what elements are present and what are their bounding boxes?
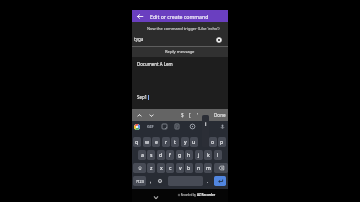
button[interactable]: a: [138, 150, 146, 160]
button[interactable]: Settings: [188, 121, 196, 132]
staticText: ?123: [136, 179, 144, 184]
button[interactable]: $: [179, 109, 185, 121]
staticText: q: [135, 139, 139, 146]
button[interactable]: y: [181, 137, 189, 147]
button[interactable]: r: [162, 137, 170, 147]
button[interactable]: Emoji: [156, 176, 164, 186]
button[interactable]: u: [190, 137, 198, 147]
staticText: ': [197, 112, 199, 118]
staticText: a: [141, 152, 144, 159]
staticText: y: [184, 139, 187, 146]
button[interactable]: x: [157, 163, 165, 173]
staticText: d: [159, 152, 163, 159]
button[interactable]: e: [152, 137, 160, 147]
button[interactable]: q: [133, 137, 141, 147]
button[interactable]: b: [185, 163, 193, 173]
button[interactable]: Next field: [147, 109, 155, 121]
staticText: r: [165, 139, 168, 146]
button[interactable]: g: [176, 150, 184, 160]
staticText: o: [211, 139, 215, 146]
button[interactable]: n: [195, 163, 203, 173]
button[interactable]: d: [157, 150, 165, 160]
staticText: .: [207, 178, 209, 184]
staticText: l: [217, 152, 219, 159]
button[interactable]: t: [171, 137, 179, 147]
button[interactable]: Period: [204, 176, 212, 186]
staticText: g: [178, 152, 182, 159]
button[interactable]: w: [143, 137, 151, 147]
staticText: [: [189, 112, 191, 118]
button[interactable]: s: [147, 150, 155, 160]
button[interactable]: m: [204, 163, 212, 173]
staticText: Sep1: [137, 94, 148, 100]
staticText: n: [197, 165, 201, 172]
staticText: Document A Lem: [137, 61, 173, 67]
button[interactable]: Back: [152, 193, 160, 201]
staticText: ,: [150, 178, 152, 184]
staticText: e: [155, 139, 158, 146]
staticText: p: [220, 139, 224, 146]
button[interactable]: [: [187, 109, 193, 121]
button[interactable]: c: [166, 163, 174, 173]
button[interactable]: Google search: [133, 121, 141, 132]
button[interactable]: o: [209, 137, 217, 147]
staticText: j: [198, 152, 200, 159]
button[interactable]: Previous field: [135, 109, 143, 121]
staticText: u: [192, 139, 196, 146]
staticText: Reply message: [165, 49, 195, 55]
button[interactable]: h: [185, 150, 193, 160]
button[interactable]: Stickers: [160, 121, 168, 132]
button[interactable]: Shift: [133, 163, 146, 173]
staticText: s: [150, 152, 153, 159]
staticText: Done: [214, 112, 226, 118]
button[interactable]: Clipboard: [173, 121, 181, 132]
staticText: c: [169, 165, 172, 172]
staticText: x: [160, 165, 163, 172]
button[interactable]: -: [201, 109, 207, 121]
button[interactable]: Reply message: [132, 47, 228, 57]
button[interactable]: j: [195, 150, 203, 160]
staticText: Recorded by: [180, 193, 197, 197]
staticText: GIF: [147, 124, 154, 129]
staticText: -: [203, 112, 205, 118]
button[interactable]: f: [166, 150, 174, 160]
button[interactable]: Enter: [214, 176, 226, 186]
staticText: Now the command trigger (Like 'echo'): [147, 26, 220, 31]
staticText: z: [150, 165, 153, 172]
staticText: b: [187, 165, 191, 172]
button[interactable]: z: [147, 163, 155, 173]
staticText: t: [174, 139, 176, 146]
button[interactable]: GIF: [146, 121, 154, 132]
button[interactable]: Voice input: [218, 121, 226, 132]
button[interactable]: Back: [134, 10, 145, 22]
staticText: AZ Recorder: [197, 193, 216, 197]
staticText: i: [205, 120, 207, 128]
staticText: k: [207, 152, 210, 159]
button[interactable]: v: [176, 163, 184, 173]
button[interactable]: Comma: [147, 176, 155, 186]
button[interactable]: k: [204, 150, 212, 160]
staticText: h: [187, 152, 191, 159]
staticText: f: [169, 152, 171, 159]
staticText: m: [206, 165, 211, 172]
button[interactable]: l: [214, 150, 222, 160]
button[interactable]: ': [195, 109, 201, 121]
staticText: tyga: [134, 36, 144, 42]
button[interactable]: Done: [214, 109, 226, 121]
button[interactable]: ?123: [133, 176, 146, 186]
button[interactable]: Clear text: [216, 37, 222, 43]
staticText: Edit or create command: [150, 13, 209, 20]
button[interactable]: p: [218, 137, 226, 147]
staticText: v: [179, 165, 182, 172]
button[interactable]: Backspace: [214, 163, 228, 173]
staticText: w: [145, 139, 150, 146]
staticText: $: [181, 112, 184, 118]
